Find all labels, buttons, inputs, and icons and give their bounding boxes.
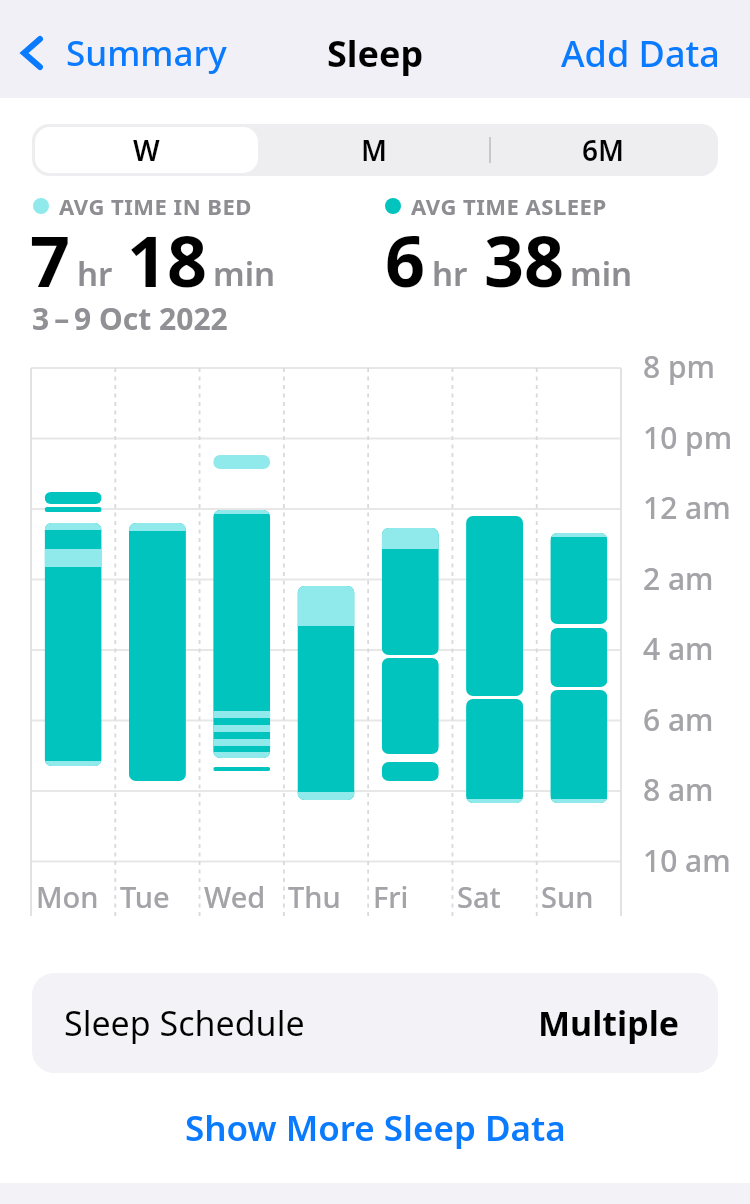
staticText: Multiple bbox=[538, 1000, 680, 1046]
staticText: Fri bbox=[373, 877, 409, 916]
staticText: Add Data bbox=[561, 29, 720, 78]
button[interactable]: 6M bbox=[489, 124, 718, 176]
staticText: 18 bbox=[127, 212, 208, 307]
staticText: 12 am bbox=[643, 487, 731, 527]
staticText: M bbox=[361, 131, 388, 169]
staticText: hr bbox=[77, 251, 113, 296]
staticText: 3 – 9 Oct 2022 bbox=[32, 298, 228, 339]
staticText: min bbox=[570, 251, 633, 296]
staticText: Summary bbox=[66, 29, 227, 77]
button[interactable]: Add Data bbox=[561, 29, 720, 78]
button[interactable]: Show More Sleep Data bbox=[0, 1100, 750, 1156]
staticText: 6M bbox=[582, 131, 625, 169]
staticText: hr bbox=[432, 251, 468, 296]
button[interactable] bbox=[35, 127, 258, 173]
staticText: 8 pm bbox=[643, 346, 715, 386]
button[interactable]: W bbox=[32, 124, 260, 176]
staticText: Wed bbox=[204, 877, 266, 916]
staticText: Show More Sleep Data bbox=[185, 1104, 566, 1152]
staticText: Sleep Schedule bbox=[64, 1000, 305, 1046]
staticText: Tue bbox=[120, 877, 170, 916]
staticText: W bbox=[133, 131, 160, 169]
staticText: 6 bbox=[385, 212, 426, 307]
staticText: AVG TIME IN BED bbox=[59, 191, 252, 221]
staticText: 7 bbox=[30, 212, 71, 307]
staticText: Mon bbox=[36, 877, 99, 916]
staticText: AVG TIME ASLEEP bbox=[411, 191, 607, 221]
staticText: 2 am bbox=[643, 558, 714, 598]
staticText: Thu bbox=[288, 877, 341, 916]
button[interactable]: M bbox=[260, 124, 489, 176]
staticText: 10 pm bbox=[643, 417, 733, 457]
staticText: 6 am bbox=[643, 699, 714, 739]
staticText: 38 bbox=[484, 212, 565, 307]
staticText: min bbox=[213, 251, 276, 296]
staticText: 8 am bbox=[643, 769, 714, 809]
staticText: Sun bbox=[541, 877, 594, 916]
staticText: 4 am bbox=[643, 628, 714, 668]
button[interactable]: Summary bbox=[20, 29, 227, 77]
staticText: Sleep bbox=[327, 29, 424, 78]
button[interactable]: Sleep Schedule bbox=[32, 973, 718, 1073]
staticText: Sat bbox=[457, 877, 501, 916]
staticText: 10 am bbox=[643, 840, 731, 880]
